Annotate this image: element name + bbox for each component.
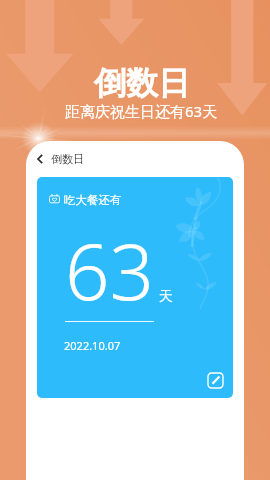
staticText: 吃大餐还有 xyxy=(64,193,122,207)
staticText: 63 xyxy=(65,217,155,323)
button[interactable]: Back xyxy=(29,148,51,170)
staticText: 2022.10.07 xyxy=(64,338,121,353)
button[interactable]: 吃大餐还有 xyxy=(37,177,233,398)
staticText: 倒数日 xyxy=(51,152,84,166)
staticText: 倒数日 xyxy=(94,63,190,103)
button[interactable]: Edit xyxy=(206,371,224,389)
staticText: 距离庆祝生日还有63天 xyxy=(65,101,218,121)
staticText: 天 xyxy=(159,288,173,306)
